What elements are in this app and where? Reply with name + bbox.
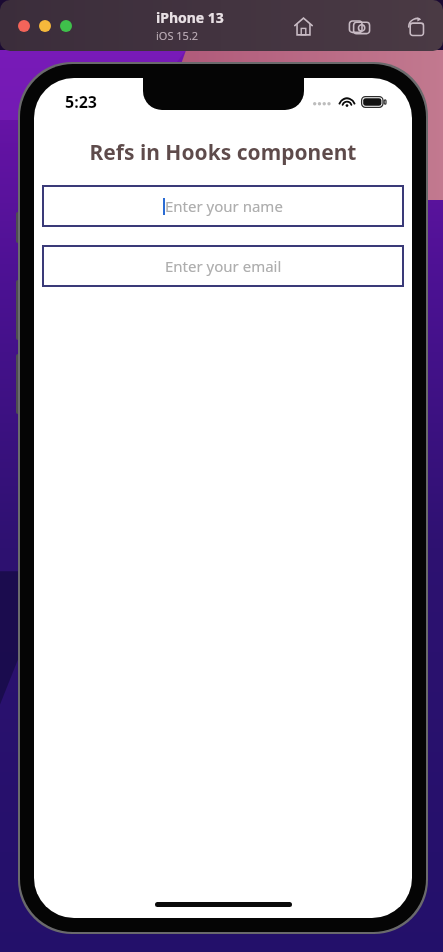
staticText: Enter your email [165,256,282,276]
button[interactable]: Home [289,12,317,40]
button[interactable]: Rotate [401,12,429,40]
button[interactable]: Zoom [60,20,72,32]
button[interactable]: Enter your email [43,246,403,286]
staticText: iPhone 13 [156,8,224,27]
button[interactable]: Screenshot [345,12,373,40]
button[interactable]: Minimize [39,20,51,32]
button[interactable]: Close [18,20,30,32]
staticText: 5:23 [65,91,97,113]
staticText: iOS 15.2 [156,28,199,43]
staticText: Enter your name [165,196,283,216]
button[interactable]: Enter your name [43,186,403,226]
staticText: Refs in Hooks component [34,138,412,167]
